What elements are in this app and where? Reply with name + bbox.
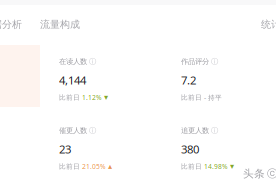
staticText: 23 [59,141,71,157]
staticText: ▲ [108,163,112,170]
staticText: ▼ [104,94,108,101]
staticText: 流量构成 [40,18,80,31]
staticText: 催更人数 [59,126,87,135]
button[interactable]: 统计 [261,18,276,31]
staticText: 380 [181,141,199,157]
staticText: 作品评分 [181,57,209,66]
staticText: 4,144 [59,72,86,88]
staticText: ▼ [230,163,234,170]
staticText: ⓘ [211,57,218,66]
staticText: 7.2 [181,72,196,88]
staticText: 21.05% [82,162,106,171]
staticText: ⓒ [267,167,276,180]
staticText: 追更人数 [181,126,209,135]
staticText: ⓘ [89,57,96,66]
staticText: 头条 [243,167,265,180]
staticText: 比前日 [181,162,202,171]
staticText: ⓘ [211,126,218,135]
button[interactable]: 据分析 [0,18,22,31]
staticText: 比前日 [181,93,202,102]
staticText: 14.98% [204,162,228,171]
staticText: 比前日 [59,162,80,171]
staticText: 统计 [261,18,276,31]
staticText: ⓘ [89,126,96,135]
staticText: 比前日 [59,93,80,102]
staticText: 据分析 [0,18,22,31]
button[interactable]: 流量构成 [40,18,80,31]
staticText: 1.12% [82,93,102,102]
staticText: 在读人数 [59,57,87,66]
staticText: - 持平 [204,93,222,102]
